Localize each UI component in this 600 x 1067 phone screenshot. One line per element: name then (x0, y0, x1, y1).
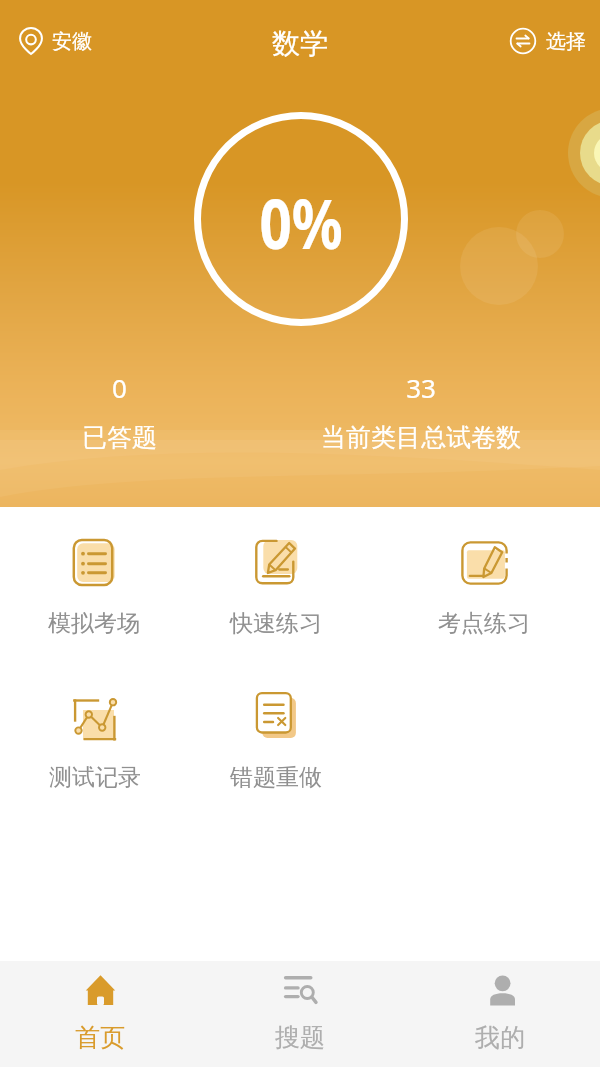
staticText: 模拟考场 (48, 609, 140, 638)
button[interactable]: 安徽 (17, 23, 94, 59)
staticText: 0% (260, 176, 343, 269)
button[interactable]: 考点练习 (424, 532, 544, 646)
button[interactable]: 首页 (0, 961, 200, 1067)
staticText: 已答题 (82, 422, 157, 453)
button[interactable]: 模拟考场 (34, 532, 154, 646)
staticText: 我的 (475, 1022, 525, 1053)
staticText: 首页 (75, 1022, 125, 1053)
button[interactable]: 选择 (507, 23, 588, 59)
button[interactable]: 测试记录 (35, 686, 155, 800)
staticText: 错题重做 (230, 763, 322, 792)
staticText: 搜题 (275, 1022, 325, 1053)
button[interactable]: 我的 (400, 961, 600, 1067)
button[interactable]: 快速练习 (216, 532, 336, 646)
staticText: 当前类目总试卷数 (321, 422, 521, 453)
staticText: 快速练习 (230, 609, 322, 638)
staticText: 安徽 (52, 29, 92, 54)
staticText: 考点练习 (438, 609, 530, 638)
staticText: 0 (112, 370, 127, 405)
button[interactable]: 错题重做 (216, 686, 336, 800)
staticText: 33 (406, 370, 436, 405)
staticText: 选择 (546, 29, 586, 54)
staticText: 测试记录 (49, 763, 141, 792)
staticText: 数学 (272, 26, 328, 61)
button[interactable]: 搜题 (200, 961, 400, 1067)
